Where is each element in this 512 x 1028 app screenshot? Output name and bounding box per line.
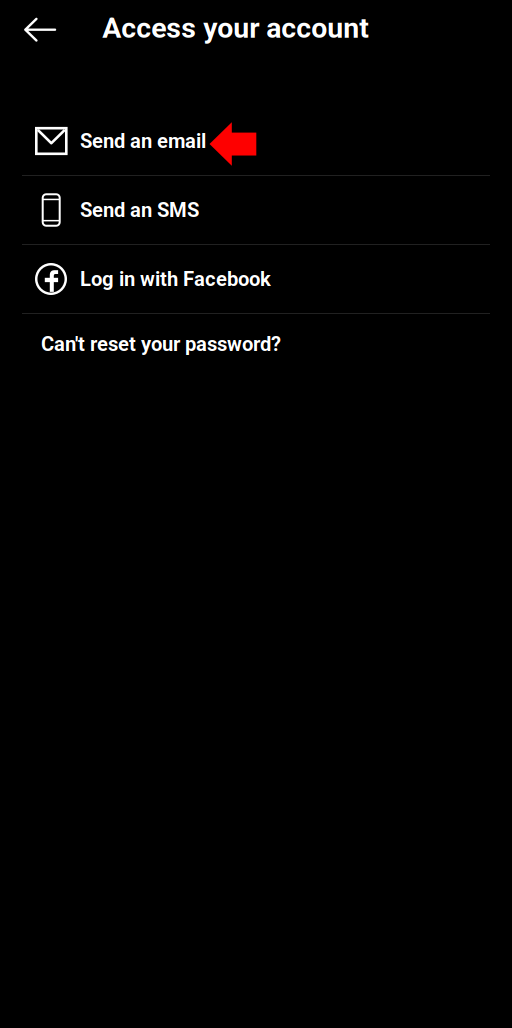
button[interactable]: Can't reset your password? xyxy=(0,314,512,374)
staticText: Access your account xyxy=(102,11,369,45)
staticText: Can't reset your password? xyxy=(41,332,281,356)
staticText: Send an email xyxy=(80,129,206,153)
button[interactable]: Send an SMS xyxy=(0,176,512,244)
staticText: Log in with Facebook xyxy=(80,267,271,291)
staticText: Send an SMS xyxy=(80,198,199,222)
button[interactable]: Back xyxy=(0,0,102,56)
button[interactable]: Log in with Facebook xyxy=(0,245,512,313)
button[interactable]: Send an email xyxy=(0,107,512,175)
